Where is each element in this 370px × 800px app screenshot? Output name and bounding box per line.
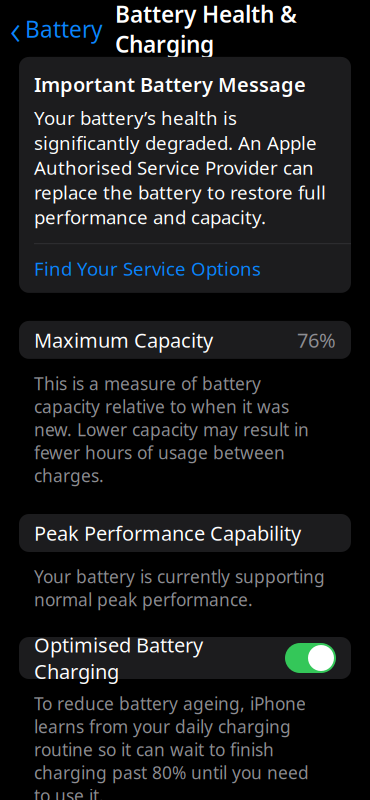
staticText: Your battery is currently supporting nor… (34, 565, 325, 611)
staticText: Battery Health & Charging (115, 0, 297, 59)
staticText: Important Battery Message (34, 71, 306, 97)
button[interactable]: Maximum Capacity (19, 321, 351, 359)
button[interactable]: ‹ (0, 0, 103, 60)
staticText: Your battery’s health is significantly d… (34, 105, 326, 229)
staticText: ‹ (10, 1, 21, 56)
button[interactable]: Optimised Battery Charging (285, 643, 336, 673)
staticText: This is a measure of battery capacity re… (34, 372, 309, 487)
button[interactable]: Peak Performance Capability (19, 514, 351, 552)
staticText: 76% (297, 327, 336, 353)
button[interactable]: Find Your Service Options (34, 244, 351, 293)
staticText: Find Your Service Options (34, 256, 261, 281)
staticText: Battery (25, 14, 103, 44)
staticText: Optimised Battery Charging (34, 631, 203, 685)
staticText: To reduce battery ageing, iPhone learns … (34, 692, 309, 800)
staticText: Maximum Capacity (34, 327, 213, 353)
staticText: Peak Performance Capability (34, 520, 301, 546)
